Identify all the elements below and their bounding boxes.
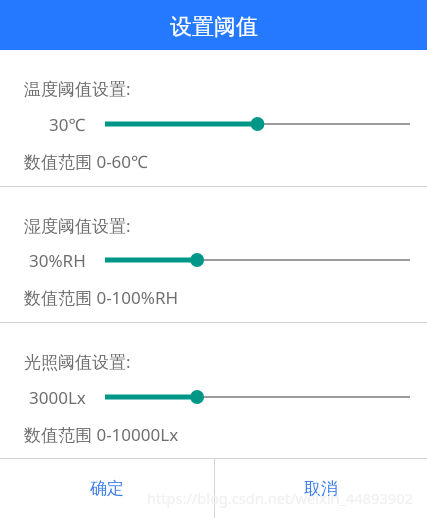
staticText: 湿度阈值设置:: [24, 214, 131, 237]
staticText: 数值范围 0-100%RH: [24, 286, 179, 309]
staticText: 30℃: [49, 113, 86, 136]
staticText: 确定: [90, 478, 124, 499]
staticText: 光照阈值设置:: [24, 350, 131, 373]
button[interactable]: Adjust 3000Lx: [96, 383, 419, 411]
staticText: 3000Lx: [29, 386, 86, 409]
staticText: 温度阈值设置:: [24, 77, 131, 100]
staticText: https://blog.csdn.net/weixin_44893902: [147, 488, 413, 508]
staticText: 数值范围 0-10000Lx: [24, 423, 179, 446]
staticText: 取消: [304, 478, 338, 499]
staticText: 设置阈值: [170, 13, 258, 41]
button[interactable]: Adjust 30℃: [96, 110, 419, 138]
staticText: 30%RH: [29, 249, 86, 272]
staticText: 数值范围 0-60℃: [24, 150, 148, 173]
button[interactable]: Adjust 30%RH: [96, 246, 419, 274]
button[interactable]: 取消: [214, 459, 427, 518]
button[interactable]: 确定: [0, 459, 214, 518]
